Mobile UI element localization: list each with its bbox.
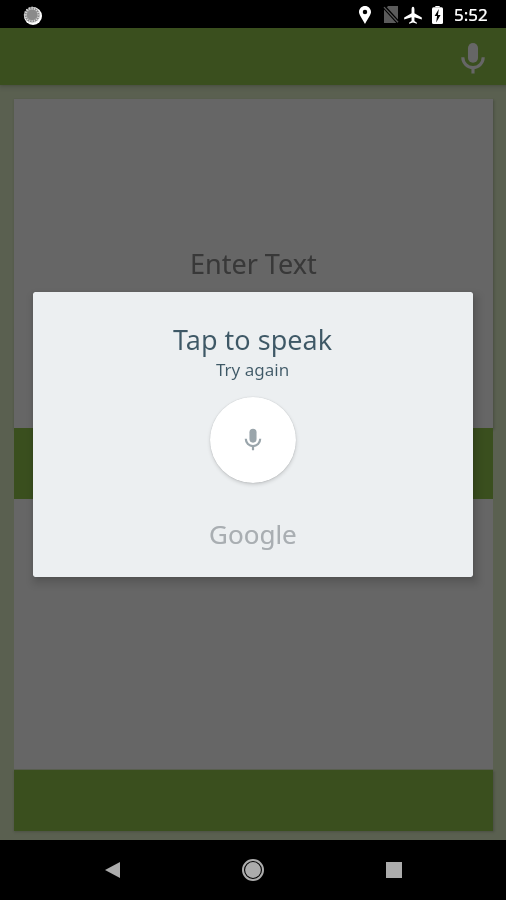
staticText: 5:52 (454, 3, 488, 26)
button[interactable] (14, 428, 493, 499)
staticText: Google (209, 516, 297, 551)
other: Notification (24, 7, 42, 25)
button[interactable]: Tap to speak (210, 397, 296, 483)
other: No SIM card (384, 6, 398, 23)
button[interactable]: Enter Text (14, 99, 493, 428)
button[interactable]: Home (229, 846, 277, 894)
staticText: Tap to speak (173, 321, 333, 358)
button[interactable]: Recent apps (370, 846, 418, 894)
button[interactable]: Voice input (451, 37, 495, 81)
staticText: Enter Text (190, 245, 317, 282)
staticText: Try again (216, 358, 290, 381)
button[interactable]: Back (88, 846, 136, 894)
